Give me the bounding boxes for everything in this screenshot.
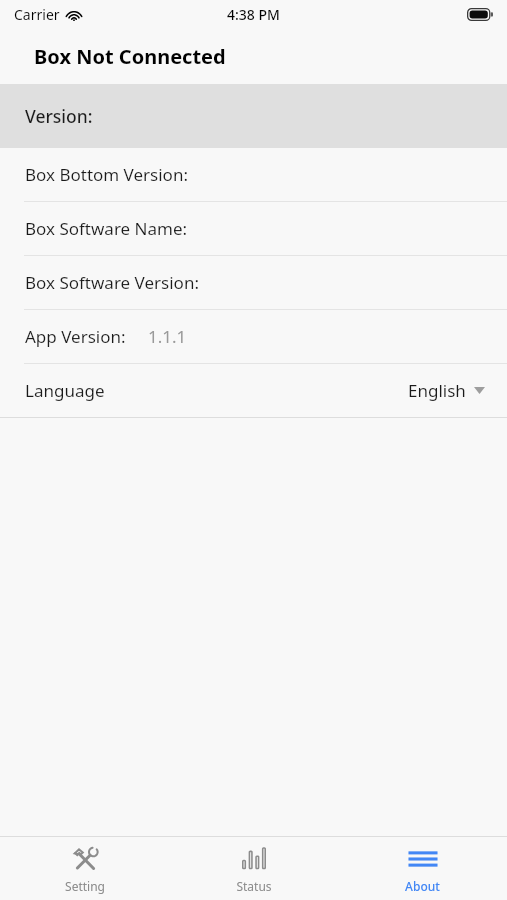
button[interactable]: Setting bbox=[0, 837, 169, 900]
button[interactable]: Box Software Name: bbox=[0, 202, 507, 255]
staticText: 4:38 PM bbox=[227, 5, 280, 24]
staticText: Box Software Version: bbox=[25, 271, 199, 294]
staticText: About bbox=[405, 878, 440, 894]
staticText: English bbox=[408, 379, 466, 402]
button[interactable]: Box Software Version: bbox=[0, 256, 507, 309]
staticText: Setting bbox=[65, 878, 105, 894]
staticText: App Version: bbox=[25, 325, 126, 348]
staticText: Language bbox=[25, 379, 105, 402]
staticText: Carrier bbox=[14, 5, 60, 24]
staticText: Box Bottom Version: bbox=[25, 163, 188, 186]
button[interactable]: Box Bottom Version: bbox=[0, 148, 507, 201]
staticText: Status bbox=[236, 878, 272, 894]
staticText: Version: bbox=[25, 104, 93, 128]
staticText: 1.1.1 bbox=[148, 325, 187, 348]
button[interactable]: About bbox=[338, 837, 507, 900]
staticText: Box Software Name: bbox=[25, 217, 188, 240]
button[interactable]: App Version: bbox=[0, 310, 507, 363]
button[interactable]: Status bbox=[169, 837, 338, 900]
button[interactable]: Language bbox=[0, 364, 507, 417]
staticText: Box Not Connected bbox=[34, 43, 226, 70]
